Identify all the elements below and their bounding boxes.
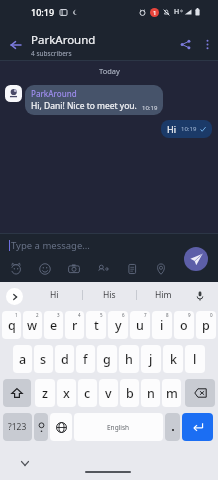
staticText: i bbox=[160, 317, 164, 334]
button[interactable]: x bbox=[57, 379, 76, 407]
staticText: j bbox=[149, 351, 153, 368]
button[interactable]: r bbox=[65, 311, 84, 339]
staticText: t bbox=[94, 317, 99, 334]
button[interactable]: f bbox=[76, 345, 95, 373]
staticText: p bbox=[202, 317, 210, 334]
staticText: c bbox=[84, 385, 91, 402]
staticText: a bbox=[19, 351, 27, 368]
button[interactable]: w bbox=[23, 311, 42, 339]
staticText: 0 bbox=[210, 312, 213, 318]
button[interactable]: n bbox=[141, 379, 160, 407]
button[interactable]: Camera bbox=[59, 258, 88, 279]
staticText: H bbox=[174, 7, 180, 17]
staticText: English bbox=[107, 423, 130, 432]
button[interactable]: Symbols bbox=[3, 413, 32, 441]
staticText: 7 bbox=[144, 312, 147, 318]
button[interactable]: i bbox=[152, 311, 172, 339]
button[interactable]: v bbox=[99, 379, 118, 407]
staticText: k bbox=[170, 351, 177, 368]
button[interactable]: m bbox=[162, 379, 181, 407]
staticText: 10:19 bbox=[142, 104, 158, 112]
staticText: v bbox=[105, 385, 112, 402]
button[interactable]: l bbox=[185, 345, 205, 373]
button[interactable]: Hi bbox=[27, 282, 82, 308]
staticText: 1 bbox=[153, 9, 157, 17]
staticText: e bbox=[50, 317, 58, 334]
button[interactable]: Send bbox=[184, 247, 208, 271]
staticText: m bbox=[166, 385, 178, 402]
staticText: q bbox=[8, 317, 16, 334]
button[interactable]: Emoji bbox=[30, 258, 59, 279]
staticText: 2 bbox=[36, 312, 39, 318]
staticText: 5 bbox=[100, 312, 103, 318]
button[interactable]: g bbox=[97, 345, 117, 373]
staticText: x bbox=[63, 385, 70, 402]
button[interactable]: Emoji bbox=[34, 413, 48, 441]
button[interactable]: More suggestions bbox=[6, 288, 23, 305]
button[interactable]: Voice input bbox=[191, 287, 208, 304]
button[interactable]: e bbox=[44, 311, 63, 339]
button[interactable]: Back bbox=[0, 24, 31, 61]
staticText: s bbox=[40, 351, 47, 368]
staticText: n bbox=[147, 385, 155, 402]
button[interactable]: Location bbox=[146, 258, 175, 279]
staticText: 10:19 bbox=[31, 6, 55, 18]
staticText: b bbox=[126, 385, 134, 402]
button[interactable]: u bbox=[130, 311, 150, 339]
staticText: Hi bbox=[167, 123, 176, 135]
staticText: h bbox=[125, 351, 133, 368]
button[interactable]: Stickers bbox=[1, 258, 30, 279]
staticText: Type a message... bbox=[11, 239, 90, 252]
staticText: o bbox=[180, 317, 188, 334]
button[interactable]: Shift bbox=[3, 379, 31, 407]
staticText: d bbox=[61, 351, 69, 368]
button[interactable]: c bbox=[78, 379, 97, 407]
staticText: y bbox=[115, 317, 122, 334]
button[interactable]: Hide keyboard bbox=[15, 453, 35, 473]
staticText: f bbox=[83, 351, 88, 368]
button[interactable]: o bbox=[174, 311, 194, 339]
staticText: 4 subscribers bbox=[31, 49, 72, 58]
staticText: 4 bbox=[78, 312, 81, 318]
button[interactable]: p bbox=[196, 311, 216, 339]
button[interactable]: s bbox=[34, 345, 53, 373]
button[interactable]: j bbox=[141, 345, 161, 373]
button[interactable]: More options bbox=[196, 24, 218, 61]
staticText: Hi, Dani! Nice to meet you. bbox=[31, 100, 137, 112]
button[interactable]: b bbox=[120, 379, 139, 407]
staticText: ?123 bbox=[8, 421, 27, 433]
button[interactable]: Space bbox=[74, 413, 163, 441]
button[interactable]: y bbox=[108, 311, 128, 339]
button[interactable]: Him bbox=[136, 282, 190, 308]
staticText: 9 bbox=[188, 312, 191, 318]
staticText: z bbox=[42, 385, 48, 402]
button[interactable]: Invite friend bbox=[88, 258, 117, 279]
button[interactable]: Period bbox=[165, 413, 180, 441]
staticText: w bbox=[27, 317, 38, 334]
button[interactable]: t bbox=[86, 311, 106, 339]
button[interactable]: d bbox=[55, 345, 74, 373]
button[interactable]: q bbox=[2, 311, 21, 339]
staticText: 3 bbox=[57, 312, 60, 318]
staticText: Him bbox=[155, 289, 172, 301]
button[interactable]: His bbox=[82, 282, 136, 308]
staticText: r bbox=[72, 317, 78, 334]
button[interactable]: a bbox=[13, 345, 32, 373]
staticText: ParkAround bbox=[31, 32, 96, 48]
staticText: g bbox=[103, 351, 111, 368]
button[interactable]: h bbox=[119, 345, 139, 373]
button[interactable]: File bbox=[117, 258, 146, 279]
staticText: Today bbox=[99, 66, 120, 76]
staticText: u bbox=[136, 317, 144, 334]
staticText: l bbox=[193, 351, 197, 368]
staticText: Hi bbox=[50, 289, 59, 301]
staticText: 8 bbox=[166, 312, 169, 318]
staticText: ParkAround bbox=[31, 88, 77, 99]
staticText: 6 bbox=[122, 312, 125, 318]
button[interactable]: Enter bbox=[182, 413, 213, 441]
button[interactable]: Backspace bbox=[185, 379, 215, 407]
button[interactable]: k bbox=[163, 345, 183, 373]
button[interactable]: z bbox=[35, 379, 55, 407]
button[interactable]: Change language bbox=[50, 413, 72, 441]
button[interactable]: Share bbox=[175, 24, 196, 61]
